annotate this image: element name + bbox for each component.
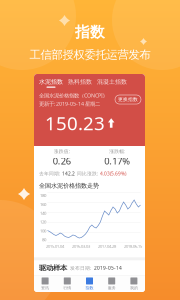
staticText: 我的 — [130, 285, 138, 290]
staticText: 2016-03-03 — [72, 243, 90, 249]
staticText: 80 — [42, 237, 46, 242]
staticText: 熟料指数 — [68, 78, 92, 86]
staticText: 140 — [40, 210, 46, 216]
button[interactable]: 混凝土指数 — [97, 78, 127, 86]
button[interactable]: 资讯 — [34, 277, 56, 290]
staticText: 120 — [40, 219, 46, 225]
staticText: 2018-06-15 — [124, 243, 142, 249]
button[interactable]: 水泥指数 — [39, 78, 63, 88]
staticText: 同比涨跌: — [77, 170, 98, 177]
staticText: 全国水泥价格指数走势 — [39, 182, 99, 189]
button[interactable]: 指数 — [78, 277, 101, 290]
staticText: 全国水泥价格指数（CONCPI) — [39, 92, 105, 99]
staticText: 150.23 — [45, 110, 105, 136]
staticText: 160 — [40, 201, 46, 207]
staticText: 去年同期: — [39, 170, 60, 177]
staticText: 发布日期: — [70, 265, 91, 271]
button[interactable]: 熟料指数 — [68, 78, 92, 86]
button[interactable]: 服务 — [101, 277, 123, 290]
staticText: 2017-04-28 — [98, 243, 116, 249]
staticText: 更换指数 — [118, 96, 138, 102]
button[interactable]: 更换指数 — [115, 95, 141, 104]
staticText: 180 — [40, 192, 46, 198]
staticText: 142.2 — [62, 170, 75, 177]
staticText: 2019-05-14 — [94, 265, 122, 271]
staticText: 工信部授权委托运营发布 — [29, 47, 150, 62]
staticText: 涨跌幅: — [109, 148, 125, 154]
staticText: 资讯 — [41, 285, 49, 290]
staticText: 指数 — [75, 23, 105, 41]
staticText: 水泥指数 — [39, 78, 63, 86]
staticText: 100 — [40, 228, 46, 234]
staticText: 4.03(5.69%) — [100, 170, 126, 177]
staticText: 服务 — [108, 285, 116, 290]
staticText: 涨跌值: — [54, 148, 70, 154]
staticText: 2015-01-04 — [46, 243, 64, 249]
button[interactable]: 我的 — [123, 277, 145, 290]
staticText: 0.26 — [53, 154, 71, 167]
staticText: 行情 — [63, 285, 71, 290]
button[interactable]: 行情 — [56, 277, 78, 290]
staticText: 指数 — [85, 285, 93, 290]
staticText: 更新于: 2019-05-14 星期二 — [39, 100, 100, 107]
staticText: 驱动样本 — [39, 263, 67, 273]
staticText: 0.17% — [104, 154, 130, 167]
staticText: 混凝土指数 — [97, 78, 127, 86]
